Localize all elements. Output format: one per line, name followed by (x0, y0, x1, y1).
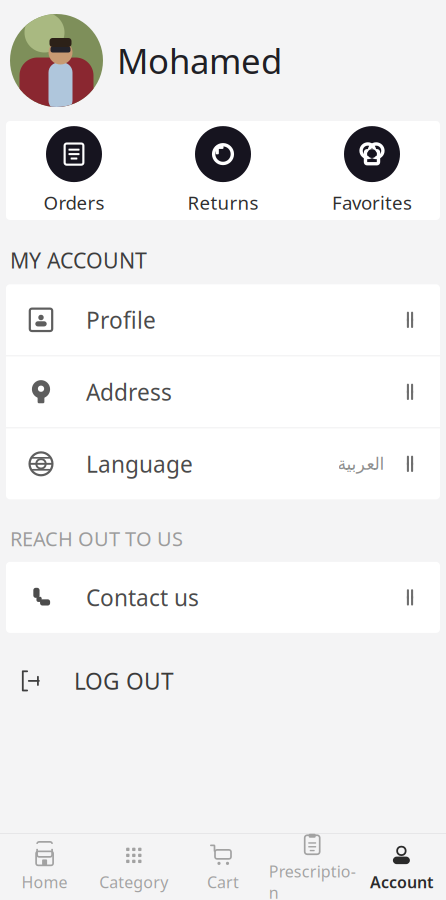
button[interactable]: Home (0, 833, 89, 900)
button[interactable]: Returns (163, 122, 283, 219)
staticText: Category (99, 871, 168, 893)
button[interactable]: Favorites (312, 122, 432, 219)
button[interactable]: Account (357, 833, 446, 900)
staticText: Profile (86, 305, 156, 335)
button[interactable]: Category (89, 833, 178, 900)
button[interactable]: Orders (14, 122, 134, 219)
button[interactable]: Language (6, 428, 440, 499)
staticText: Home (22, 871, 68, 893)
staticText: MY ACCOUNT (10, 246, 147, 274)
staticText: Mohamed (117, 37, 282, 83)
button[interactable]: Address (6, 356, 440, 427)
button[interactable]: Profile (6, 284, 440, 355)
button[interactable]: LOG OUT (0, 651, 446, 711)
staticText: Account (370, 871, 433, 893)
staticText: Prescription (269, 861, 356, 900)
staticText: LOG OUT (74, 666, 174, 696)
staticText: العربية (337, 454, 384, 474)
staticText: Orders (43, 190, 104, 215)
staticText: REACH OUT TO US (10, 525, 183, 552)
staticText: Language (86, 449, 193, 479)
staticText: Returns (187, 190, 258, 215)
button[interactable]: Cart (178, 833, 268, 900)
staticText: Cart (207, 871, 239, 893)
button[interactable]: Prescription (268, 823, 357, 900)
staticText: Favorites (332, 190, 412, 215)
staticText: Contact us (86, 582, 199, 612)
button[interactable]: Profile photo (10, 14, 103, 107)
button[interactable]: Contact us (6, 562, 440, 633)
staticText: Address (86, 377, 172, 407)
